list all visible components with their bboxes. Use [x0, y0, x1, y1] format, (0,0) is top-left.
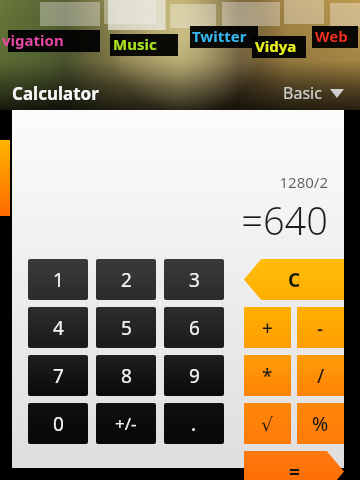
button[interactable]: 3	[164, 259, 224, 300]
staticText: +/-	[115, 412, 137, 435]
staticText: 8	[121, 363, 132, 389]
staticText: Vidya	[255, 36, 297, 56]
button[interactable]: 6	[164, 307, 224, 348]
staticText: 3	[189, 267, 200, 293]
staticText: √	[261, 413, 274, 435]
button[interactable]: 9	[164, 355, 224, 396]
staticText: 1280/2	[279, 172, 328, 192]
button[interactable]: 0	[28, 403, 88, 444]
staticText: vigation	[2, 30, 64, 50]
staticText: 9	[189, 363, 200, 389]
staticText: 0	[53, 411, 64, 437]
button[interactable]: /	[297, 355, 344, 396]
staticText: 1	[53, 267, 64, 293]
staticText: =	[289, 459, 300, 480]
button[interactable]: *	[244, 355, 291, 396]
staticText: -	[317, 315, 324, 341]
staticText: .	[191, 411, 197, 437]
button[interactable]: 4	[28, 307, 88, 348]
staticText: Music	[113, 34, 157, 54]
staticText: =640	[241, 194, 328, 246]
staticText: 5	[121, 315, 132, 341]
staticText: C	[288, 267, 301, 293]
staticText: %	[312, 411, 329, 437]
button[interactable]: 7	[28, 355, 88, 396]
button[interactable]: C	[244, 259, 344, 300]
staticText: 2	[121, 267, 132, 293]
staticText: /	[317, 363, 325, 389]
button[interactable]: +	[244, 307, 291, 348]
button[interactable]: =	[244, 451, 344, 480]
staticText: 6	[189, 315, 200, 341]
button[interactable]: .	[164, 403, 224, 444]
button[interactable]: Basic	[279, 78, 348, 108]
staticText: Web	[315, 26, 348, 46]
button[interactable]: 5	[96, 307, 156, 348]
button[interactable]: 1	[28, 259, 88, 300]
button[interactable]: +/-	[96, 403, 156, 444]
button[interactable]: Open panel	[0, 140, 10, 216]
staticText: Basic	[283, 82, 322, 104]
button[interactable]: 8	[96, 355, 156, 396]
staticText: 7	[53, 363, 64, 389]
button[interactable]: %	[297, 403, 344, 444]
staticText: Calculator	[12, 82, 99, 105]
staticText: *	[262, 363, 273, 389]
button[interactable]: √	[244, 403, 291, 444]
staticText: +	[262, 315, 273, 341]
staticText: 4	[53, 315, 64, 341]
staticText: Twitter	[192, 26, 247, 46]
button[interactable]: 2	[96, 259, 156, 300]
button[interactable]: -	[297, 307, 344, 348]
